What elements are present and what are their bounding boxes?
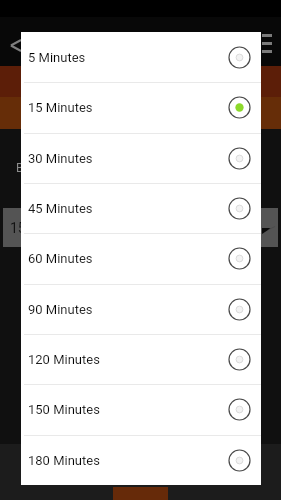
button[interactable]: 120 Minutes (21, 334, 261, 384)
staticText: 45 Minutes (28, 201, 93, 216)
button[interactable]: Back (0, 26, 32, 58)
staticText: Bedtime reminder (16, 161, 111, 175)
button[interactable]: Menu (259, 27, 277, 56)
staticText: 15 Minutes (10, 220, 80, 236)
button[interactable]: 15 Minutes (3, 208, 278, 247)
staticText: 30 Minutes (28, 151, 93, 166)
button[interactable]: 90 Minutes (21, 284, 261, 334)
staticText: 5 Minutes (28, 50, 86, 65)
button[interactable]: 45 Minutes (21, 183, 261, 233)
staticText: 150 Minutes (28, 402, 100, 417)
staticText: 120 Minutes (28, 352, 100, 367)
staticText: 180 Minutes (28, 453, 100, 468)
staticText: 90 Minutes (28, 302, 93, 317)
button[interactable]: 180 Minutes (21, 435, 261, 485)
button[interactable]: 5 Minutes (21, 32, 261, 82)
button[interactable]: 60 Minutes (21, 233, 261, 283)
button[interactable]: 15 Minutes (21, 82, 261, 132)
staticText: 60 Minutes (28, 251, 93, 266)
button[interactable]: 30 Minutes (21, 133, 261, 183)
button[interactable]: 150 Minutes (21, 384, 261, 434)
staticText: 15 Minutes (28, 100, 93, 115)
